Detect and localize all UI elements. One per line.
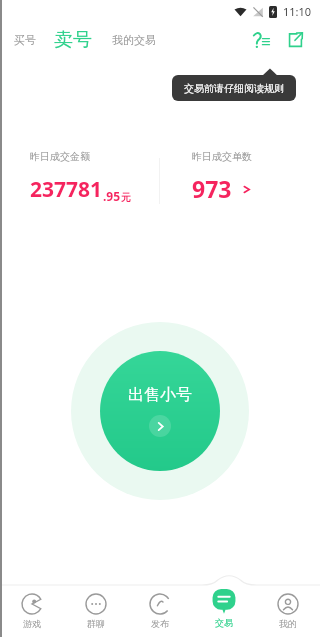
staticText: 237781: [30, 175, 103, 204]
button[interactable]: Help rules: [248, 27, 274, 53]
staticText: .95: [103, 188, 121, 204]
button[interactable]: 我的: [256, 579, 320, 637]
button[interactable]: 交易: [192, 579, 256, 637]
button[interactable]: Share: [282, 27, 308, 53]
staticText: 973: [192, 173, 232, 204]
staticText: 群聊: [87, 618, 105, 629]
button[interactable]: 卖号: [50, 26, 96, 54]
staticText: 交易: [215, 617, 233, 628]
staticText: 卖号: [54, 28, 92, 52]
staticText: 昨日成交金额: [30, 150, 90, 163]
button[interactable]: 发布: [128, 579, 192, 637]
button[interactable]: 昨日成交单数: [160, 150, 320, 212]
staticText: 出售小号: [128, 385, 192, 405]
staticText: 昨日成交单数: [192, 150, 252, 163]
staticText: 我的: [279, 618, 297, 629]
button[interactable]: 出售小号: [71, 322, 249, 500]
button[interactable]: 交易前请仔细阅读规则: [172, 75, 296, 101]
staticText: 游戏: [23, 618, 41, 629]
button[interactable]: 游戏: [0, 579, 64, 637]
staticText: 元: [121, 191, 131, 204]
staticText: 发布: [151, 618, 169, 629]
staticText: 我的交易: [112, 33, 156, 47]
staticText: 交易前请仔细阅读规则: [184, 82, 284, 95]
button[interactable]: 我的交易: [108, 29, 160, 51]
button[interactable]: 买号: [10, 29, 40, 51]
button[interactable]: 群聊: [64, 579, 128, 637]
staticText: 11:10: [283, 4, 312, 19]
staticText: 买号: [14, 33, 36, 47]
